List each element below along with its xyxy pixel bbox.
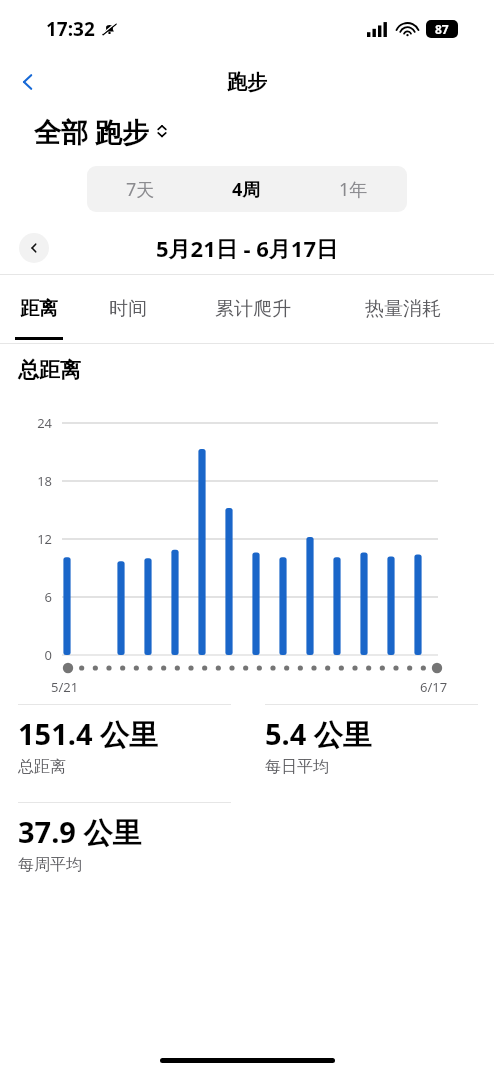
staticText: 总距离 bbox=[18, 357, 81, 383]
staticText: 5/21 bbox=[51, 678, 79, 696]
staticText: 7天 bbox=[126, 177, 155, 202]
button[interactable]: 1年 bbox=[300, 166, 407, 212]
button[interactable]: Previous period bbox=[19, 233, 49, 263]
staticText: 距离 bbox=[20, 297, 58, 321]
button[interactable]: 4周 bbox=[193, 166, 300, 212]
staticText: 跑步 bbox=[227, 70, 267, 95]
staticText: 时间 bbox=[109, 297, 147, 321]
staticText: 每日平均 bbox=[265, 757, 329, 777]
staticText: 37.9 公里 bbox=[18, 812, 142, 852]
button[interactable]: 7天 bbox=[87, 166, 193, 212]
staticText: 17:32 bbox=[46, 16, 95, 42]
button[interactable]: 热量消耗 bbox=[328, 275, 478, 343]
staticText: 累计爬升 bbox=[215, 297, 291, 321]
staticText: 151.4 公里 bbox=[18, 714, 159, 754]
button[interactable]: 全部 跑步 bbox=[0, 106, 494, 156]
button[interactable]: 累计爬升 bbox=[178, 275, 328, 343]
staticText: 4周 bbox=[232, 177, 261, 202]
staticText: 每周平均 bbox=[18, 855, 82, 875]
staticText: 0 bbox=[0, 646, 52, 664]
button[interactable]: 37.9 公里 bbox=[0, 802, 247, 900]
staticText: 5月21日 - 6月17日 bbox=[156, 233, 338, 263]
button[interactable]: 距离 bbox=[0, 275, 78, 343]
staticText: 87 bbox=[435, 21, 449, 37]
staticText: 1年 bbox=[339, 177, 368, 202]
staticText: 6 bbox=[0, 588, 52, 606]
button[interactable]: 时间 bbox=[78, 275, 178, 343]
staticText: 12 bbox=[0, 530, 52, 548]
button[interactable]: 5.4 公里 bbox=[247, 704, 494, 802]
staticText: 热量消耗 bbox=[365, 297, 441, 321]
staticText: 5.4 公里 bbox=[265, 714, 372, 754]
staticText: 6/17 bbox=[420, 678, 448, 696]
staticText: 18 bbox=[0, 472, 52, 490]
staticText: 24 bbox=[0, 414, 52, 432]
staticText: 总距离 bbox=[18, 757, 66, 777]
button[interactable]: 151.4 公里 bbox=[0, 704, 247, 802]
staticText: 全部 跑步 bbox=[34, 113, 150, 150]
button[interactable]: Back bbox=[8, 62, 48, 102]
